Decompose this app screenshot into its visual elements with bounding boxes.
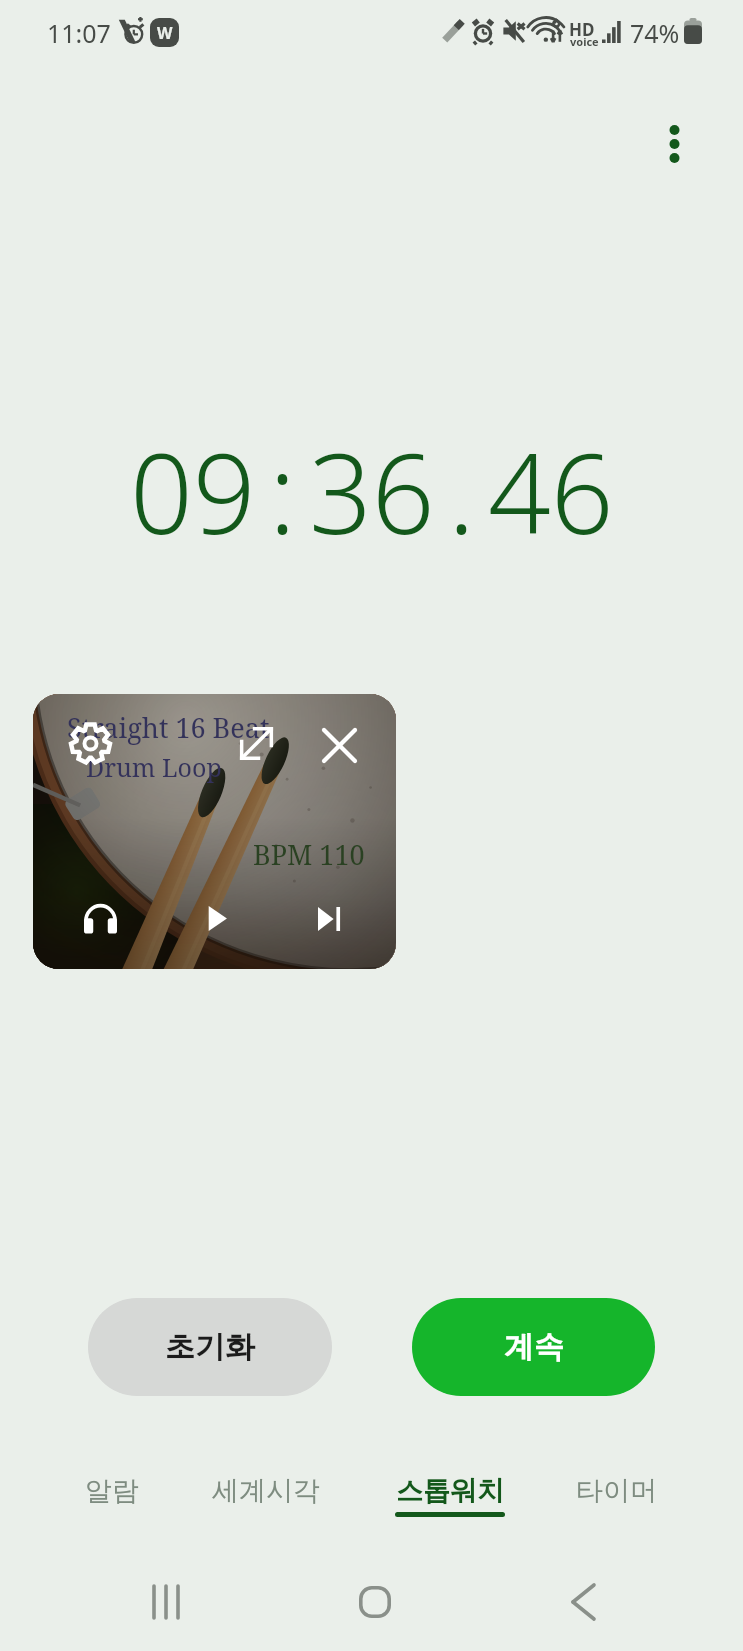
button[interactable]: Home: [343, 1570, 407, 1634]
button[interactable]: Close: [317, 723, 361, 767]
button[interactable]: Settings: [68, 721, 112, 765]
staticText: Straight 16 Beat: [67, 709, 270, 746]
staticText: 36: [309, 416, 435, 566]
button[interactable]: Recents: [134, 1570, 198, 1634]
button[interactable]: 알람: [28, 1474, 196, 1540]
button[interactable]: More options: [648, 118, 700, 170]
staticText: 초기화: [165, 1328, 255, 1366]
staticText: W: [157, 22, 173, 44]
staticText: 알람: [85, 1474, 139, 1508]
staticText: 11:07: [47, 16, 111, 50]
staticText: :: [269, 416, 296, 566]
staticText: BPM 110: [253, 836, 365, 873]
button[interactable]: Headphones: [78, 895, 122, 939]
staticText: 스톱워치: [396, 1474, 504, 1508]
button[interactable]: Back: [551, 1570, 615, 1634]
staticText: Drum Loop: [86, 750, 222, 784]
staticText: voice: [570, 34, 599, 49]
staticText: 46: [488, 416, 614, 566]
button[interactable]: 계속: [412, 1298, 655, 1396]
staticText: 타이머: [576, 1474, 657, 1508]
staticText: 세계시각: [212, 1474, 320, 1508]
button[interactable]: Expand: [234, 721, 278, 765]
button[interactable]: 타이머: [532, 1474, 700, 1540]
button[interactable]: 초기화: [88, 1298, 332, 1396]
button[interactable]: Next: [307, 897, 351, 941]
button[interactable]: Play: [195, 896, 239, 940]
staticText: 74%: [630, 16, 680, 50]
staticText: .: [448, 416, 475, 566]
button[interactable]: 스톱워치: [366, 1474, 534, 1540]
button[interactable]: 세계시각: [182, 1474, 350, 1540]
staticText: HD: [569, 18, 595, 41]
staticText: 계속: [504, 1328, 564, 1366]
button[interactable]: Straight 16 Beat: [33, 694, 396, 969]
staticText: 09: [130, 416, 256, 566]
